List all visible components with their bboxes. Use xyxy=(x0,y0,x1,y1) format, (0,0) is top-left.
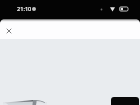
button[interactable]: Close xyxy=(2,24,15,37)
staticText: 21:10 xyxy=(17,5,32,13)
button[interactable]: Action xyxy=(111,97,139,105)
